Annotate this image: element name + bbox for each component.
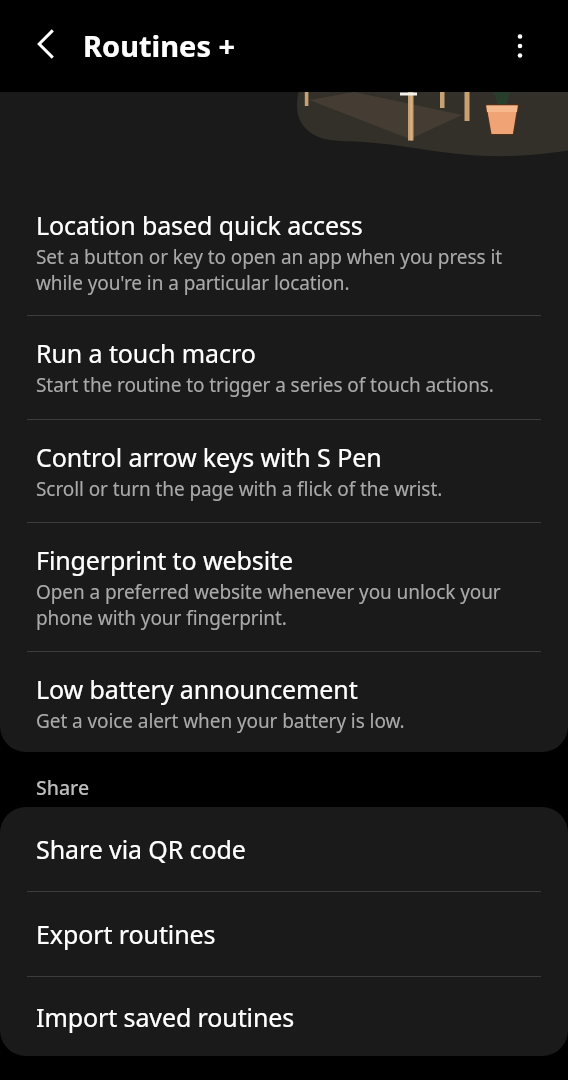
staticText: Start the routine to trigger a series of… [36,372,494,398]
button[interactable]: Export routines [0,892,568,976]
button[interactable]: Control arrow keys with S Pen [0,420,568,522]
staticText: Share via QR code [36,832,246,866]
staticText: Set a button or key to open an app when … [36,244,540,296]
button[interactable]: Run a touch macro [0,316,568,419]
staticText: Import saved routines [36,1000,295,1034]
button[interactable]: Location based quick access [0,192,568,315]
button[interactable]: Low battery announcement [0,652,568,752]
staticText: Routines + [83,26,236,65]
button[interactable]: Import saved routines [0,977,568,1056]
staticText: Get a voice alert when your battery is l… [36,708,405,734]
button[interactable]: More options [496,22,544,70]
staticText: Scroll or turn the page with a flick of … [36,476,443,502]
staticText: Location based quick access [36,208,363,242]
button[interactable]: Share via QR code [0,807,568,891]
staticText: Open a preferred website whenever you un… [36,579,540,631]
staticText: Run a touch macro [36,336,256,370]
button[interactable]: Navigate up [22,20,70,68]
staticText: Low battery announcement [36,672,358,706]
staticText: Export routines [36,917,216,951]
staticText: Fingerprint to website [36,543,293,577]
staticText: Share [36,774,90,801]
button[interactable]: Fingerprint to website [0,523,568,651]
staticText: Control arrow keys with S Pen [36,440,382,474]
